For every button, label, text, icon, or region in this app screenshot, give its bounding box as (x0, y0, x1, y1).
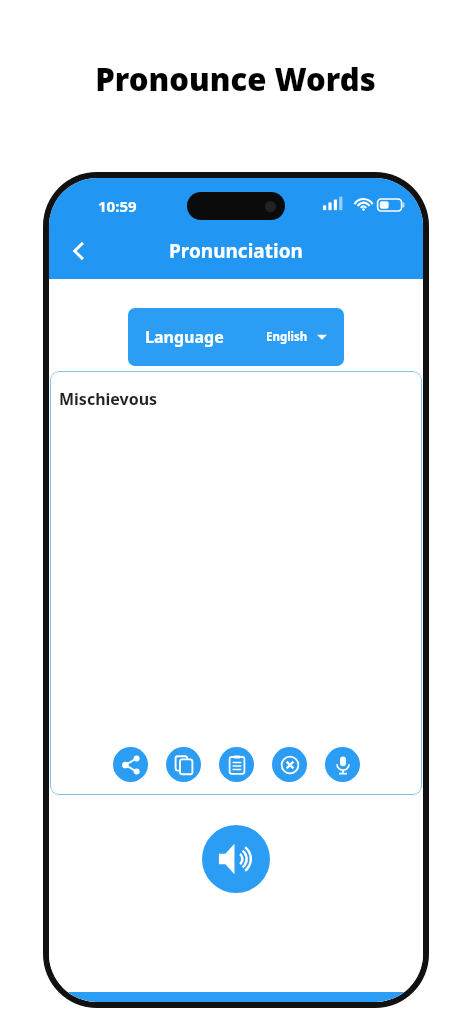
staticText: Language (145, 326, 224, 348)
button[interactable]: Paste (219, 747, 254, 782)
button[interactable]: Back (57, 229, 101, 273)
button[interactable]: Mischievous (50, 371, 422, 795)
staticText: Pronounce Words (95, 58, 376, 100)
button[interactable]: Clear (272, 747, 307, 782)
button[interactable]: Microphone (325, 747, 360, 782)
button[interactable]: Play pronunciation (202, 825, 270, 893)
button[interactable]: Share (113, 747, 148, 782)
staticText: Pronunciation (169, 238, 303, 264)
staticText: English (266, 329, 308, 345)
staticText: 10:59 (98, 196, 137, 216)
button[interactable]: Language (128, 308, 344, 366)
button[interactable]: Copy (166, 747, 201, 782)
staticText: Mischievous (59, 388, 158, 410)
